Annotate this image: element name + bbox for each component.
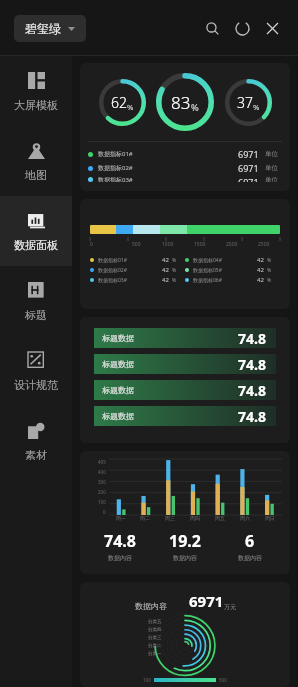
staticText: 标题数据 xyxy=(102,333,134,343)
staticText: 500 xyxy=(132,241,141,248)
staticText: 分类一 xyxy=(148,651,162,657)
staticText: 分类五 xyxy=(148,619,162,625)
button[interactable]: 数据面板 xyxy=(0,196,72,266)
staticText: 37 xyxy=(237,93,253,112)
staticText: 标题数据 xyxy=(102,359,134,369)
staticText: 分类三 xyxy=(148,635,162,641)
staticText: 周日 xyxy=(265,515,275,521)
button[interactable]: 设计规范 xyxy=(0,336,72,406)
staticText: 42 xyxy=(162,266,169,274)
button[interactable]: Refresh xyxy=(230,16,254,40)
staticText: 数据指标03# xyxy=(98,176,133,182)
staticText: % xyxy=(172,257,177,264)
staticText: 74.8 xyxy=(104,530,136,552)
staticText: 周三 xyxy=(165,515,175,521)
staticText: % xyxy=(172,267,177,274)
staticText: 标题 xyxy=(25,308,47,322)
staticText: 2000 xyxy=(226,241,238,248)
staticText: 1000 xyxy=(162,241,174,248)
staticText: 数据面板 xyxy=(14,238,58,252)
staticText: 素材 xyxy=(25,448,47,462)
staticText: % xyxy=(172,277,177,284)
staticText: 0 xyxy=(103,509,106,515)
staticText: 2500 xyxy=(258,241,270,248)
staticText: 74.8 xyxy=(238,381,266,400)
staticText: 周六 xyxy=(240,515,250,521)
staticText: 500 xyxy=(219,677,227,683)
staticText: 数据指标06# xyxy=(193,277,222,284)
staticText: 单位 xyxy=(265,150,278,158)
staticText: 大屏模板 xyxy=(14,98,58,112)
staticText: 分类二 xyxy=(148,643,162,649)
button[interactable]: 素材 xyxy=(0,406,72,476)
staticText: % xyxy=(191,101,199,114)
staticText: 分类四 xyxy=(148,627,162,633)
staticText: 数据指标04# xyxy=(193,257,222,264)
staticText: 数据指标05# xyxy=(193,267,222,274)
staticText: 83 xyxy=(171,91,191,114)
staticText: 数据指标01# xyxy=(98,150,133,158)
staticText: 6971 xyxy=(238,148,259,160)
staticText: 6971 xyxy=(238,176,259,182)
button[interactable]: Search xyxy=(200,16,224,40)
staticText: 42 xyxy=(162,276,169,284)
staticText: 200 xyxy=(98,489,106,495)
staticText: % xyxy=(267,267,272,274)
staticText: 100 xyxy=(143,677,151,683)
staticText: % xyxy=(253,102,260,112)
staticText: 74.8 xyxy=(238,329,266,348)
staticText: 42 xyxy=(257,276,264,284)
staticText: 数据内容 xyxy=(135,601,167,611)
staticText: 碧玺绿 xyxy=(25,21,61,36)
staticText: 74.8 xyxy=(238,355,266,374)
staticText: 19.2 xyxy=(169,530,201,552)
staticText: % xyxy=(267,277,272,284)
staticText: 0 xyxy=(90,241,93,248)
staticText: 数据内容 xyxy=(173,554,197,562)
staticText: 6971 xyxy=(189,591,224,611)
staticText: 62 xyxy=(111,93,127,112)
staticText: % xyxy=(267,257,272,264)
staticText: 数据指标03# xyxy=(98,277,127,284)
staticText: 万元 xyxy=(224,603,236,611)
staticText: 单位 xyxy=(265,176,278,182)
staticText: 495 xyxy=(98,459,106,465)
staticText: 42 xyxy=(257,266,264,274)
button[interactable]: 碧玺绿 xyxy=(14,15,86,42)
staticText: 6 xyxy=(245,530,255,552)
staticText: 100 xyxy=(98,499,106,505)
staticText: 地图 xyxy=(25,168,47,182)
staticText: 周二 xyxy=(140,515,150,521)
staticText: 400 xyxy=(98,469,106,475)
staticText: 周一 xyxy=(116,515,126,521)
staticText: 1500 xyxy=(194,241,206,248)
staticText: 标题数据 xyxy=(102,385,134,395)
staticText: 42 xyxy=(257,256,264,264)
staticText: 数据指标01# xyxy=(98,257,127,264)
staticText: 6971 xyxy=(238,162,259,174)
staticText: 单位 xyxy=(265,164,278,172)
button[interactable]: Close xyxy=(260,16,284,40)
staticText: 数据指标02# xyxy=(98,267,127,274)
staticText: 数据内容 xyxy=(238,554,262,562)
staticText: 数据指标02# xyxy=(98,164,133,172)
staticText: 300 xyxy=(98,479,106,485)
staticText: % xyxy=(127,102,134,112)
button[interactable]: 标题 xyxy=(0,266,72,336)
button[interactable]: 大屏模板 xyxy=(0,56,72,126)
staticText: 设计规范 xyxy=(14,378,58,392)
staticText: 周四 xyxy=(190,515,200,521)
staticText: 数据内容 xyxy=(108,554,132,562)
staticText: 周五 xyxy=(215,515,225,521)
staticText: 标题数据 xyxy=(102,411,134,421)
button[interactable]: 地图 xyxy=(0,126,72,196)
staticText: 74.8 xyxy=(238,407,266,426)
staticText: 42 xyxy=(162,256,169,264)
